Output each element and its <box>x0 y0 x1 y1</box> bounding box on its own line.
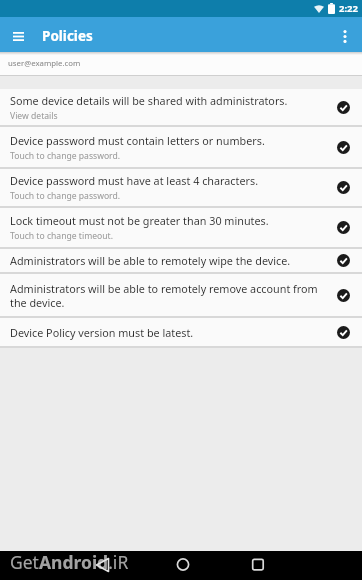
staticText: Administrators will be able to remotely … <box>10 253 291 268</box>
staticText: Touch to change password. <box>10 190 121 202</box>
staticText: GetAndroid.iR <box>10 550 129 574</box>
button[interactable] <box>90 551 118 580</box>
staticText: 2:22 <box>339 2 358 15</box>
button[interactable]: Administrators will be able to remotely … <box>0 274 362 316</box>
button[interactable]: Device password must have at least 4 cha… <box>0 169 362 206</box>
button[interactable]: Lock timeout must not be greater than 30… <box>0 208 362 247</box>
staticText: Administrators will be able to remotely … <box>10 281 318 310</box>
staticText: Some device details will be shared with … <box>10 93 288 108</box>
button[interactable]: Administrators will be able to remotely … <box>0 249 362 272</box>
button[interactable]: Device Policy version must be latest. <box>0 318 362 346</box>
button[interactable]: user@example.com <box>0 52 362 75</box>
button[interactable] <box>8 26 28 46</box>
staticText: View details <box>10 110 58 122</box>
button[interactable]: Device password must contain letters or … <box>0 127 362 167</box>
staticText: Touch to change timeout. <box>10 230 113 242</box>
button[interactable] <box>120 551 241 580</box>
staticText: user@example.com <box>8 58 81 69</box>
staticText: Device Policy version must be latest. <box>10 325 194 340</box>
button[interactable] <box>338 29 352 43</box>
staticText: Touch to change password. <box>10 150 121 162</box>
staticText: Lock timeout must not be greater than 30… <box>10 213 269 228</box>
staticText: Device password must contain letters or … <box>10 133 265 148</box>
button[interactable] <box>0 551 120 580</box>
staticText: Policies <box>42 27 93 45</box>
staticText: Device password must have at least 4 cha… <box>10 173 259 188</box>
button[interactable]: Some device details will be shared with … <box>0 89 362 125</box>
button[interactable] <box>241 551 362 580</box>
